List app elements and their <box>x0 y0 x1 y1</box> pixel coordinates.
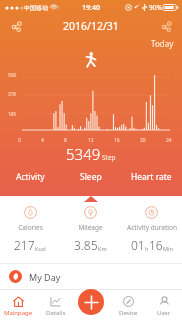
button[interactable]: Device <box>110 290 146 323</box>
staticText: 19:40 <box>82 3 100 13</box>
staticText: Activity <box>16 171 45 183</box>
staticText: h <box>145 245 149 252</box>
staticText: Calories <box>18 223 43 232</box>
staticText: Heart rate <box>131 171 172 183</box>
staticText: 8 <box>64 137 67 144</box>
staticText: 20 <box>140 137 146 144</box>
staticText: 5349 <box>66 144 101 164</box>
staticText: 12 <box>88 137 94 144</box>
staticText: Activity duration <box>127 223 177 232</box>
staticText: 3.85 <box>74 237 98 253</box>
staticText: 0 <box>18 137 21 144</box>
staticText: 中国移动 <box>24 4 48 12</box>
staticText: Device <box>119 309 138 317</box>
button[interactable]: Details <box>37 290 74 323</box>
button[interactable]: Sleep <box>60 168 121 186</box>
staticText: 217 <box>14 237 35 253</box>
staticText: Mileage <box>78 223 103 232</box>
button[interactable]: Mainpage <box>0 290 37 323</box>
staticText: 378 <box>8 91 16 97</box>
button[interactable]: Link <box>156 16 176 36</box>
staticText: Step <box>102 153 116 162</box>
button[interactable]: Calories <box>0 206 60 253</box>
button[interactable]: My Day <box>0 264 182 289</box>
staticText: 16 <box>114 137 120 144</box>
staticText: Mainpage <box>4 309 33 317</box>
staticText: 24 <box>166 137 172 144</box>
button[interactable]: Activity <box>0 168 60 186</box>
staticText: 4 <box>41 137 44 144</box>
staticText: User <box>157 309 171 317</box>
staticText: Min <box>163 245 173 252</box>
button[interactable]: Activity duration <box>121 206 182 253</box>
button[interactable]: Share <box>6 16 26 36</box>
staticText: 2016/12/31 <box>63 19 119 33</box>
button[interactable]: Today <box>151 38 174 49</box>
staticText: Today <box>151 38 174 49</box>
button[interactable]: Heart rate <box>121 168 182 186</box>
staticText: Km <box>98 245 107 252</box>
staticText: Sleep <box>80 171 102 183</box>
button[interactable]: User <box>146 290 182 323</box>
button[interactable]: Add <box>78 289 104 315</box>
staticText: 568 <box>8 72 16 78</box>
staticText: 90% <box>149 3 162 12</box>
staticText: 16 <box>149 237 163 253</box>
staticText: Kcal <box>35 245 46 252</box>
button[interactable]: Mileage <box>60 206 121 253</box>
staticText: My Day <box>29 271 61 283</box>
staticText: 189 <box>8 111 16 117</box>
staticText: 01 <box>131 237 145 253</box>
staticText: Details <box>46 309 66 317</box>
